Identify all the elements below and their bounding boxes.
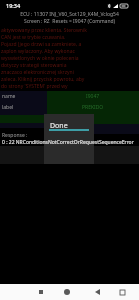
staticText: 0 : 22 NRConditionsNotCorrectOrRequestSe… xyxy=(2,139,134,146)
staticText: do strony 'SYSTEM' przed wy xyxy=(1,83,68,90)
staticText: Response : xyxy=(2,132,28,139)
staticText: zaplon wylaczony. Aby wykonac xyxy=(1,48,75,55)
button[interactable]: Back xyxy=(89,284,105,300)
staticText: Pojazd (jego drzwi sa zamkniete, a xyxy=(1,41,82,48)
button[interactable]: label xyxy=(0,102,47,113)
staticText: aktywowany przez klienta. Sterownik xyxy=(1,27,87,34)
button[interactable]: name xyxy=(0,91,47,102)
staticText: ECU : 11307 INJ_V60_Sot129_K4M_Vclog54 xyxy=(0,11,139,18)
staticText: znaczaco elektronicznej skrzyni xyxy=(1,69,74,76)
staticText: label xyxy=(2,104,14,111)
staticText: I9047 xyxy=(86,93,100,100)
button[interactable] xyxy=(0,115,47,123)
button[interactable]: Recents xyxy=(33,284,49,300)
staticText: zaleca. Kliknij przycisk powrotu, aby xyxy=(1,76,85,83)
button[interactable]: Rotate screen xyxy=(114,284,130,300)
button[interactable]: PREKIDO xyxy=(47,102,139,113)
staticText: PREKIDO xyxy=(82,104,104,111)
button[interactable]: Done xyxy=(44,114,94,164)
staticText: 19:34 xyxy=(6,2,21,9)
staticText: dotyczy strategii sterowania xyxy=(1,62,67,69)
staticText: CAN jest w trybie czuwania. xyxy=(1,34,66,41)
staticText: Done xyxy=(50,121,68,131)
button[interactable]: Home xyxy=(59,284,75,300)
staticText: Screen : RZ Resets = I9047 (Command) xyxy=(0,18,139,25)
button[interactable]: I9047 xyxy=(47,91,139,102)
staticText: name xyxy=(2,93,16,100)
button[interactable]: scenario xyxy=(0,113,47,124)
staticText: wyswietlonych w oknie polecenia xyxy=(1,55,79,62)
